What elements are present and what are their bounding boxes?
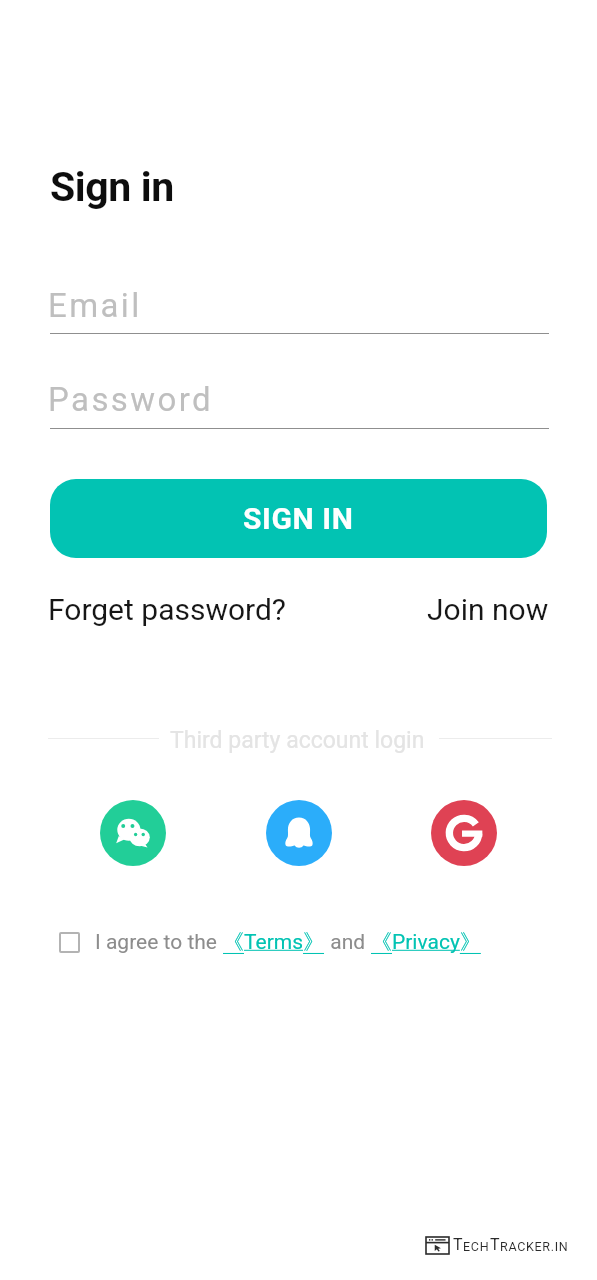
staticText: Sign in xyxy=(50,163,174,211)
staticText: Password xyxy=(48,380,213,419)
staticText: Third party account login xyxy=(170,727,425,754)
button[interactable]: 《Terms》 xyxy=(223,929,325,955)
staticText: RACKER.IN xyxy=(500,1239,569,1254)
button[interactable]: Sign in with QQ xyxy=(266,800,332,866)
button[interactable]: Agree to terms checkbox xyxy=(59,932,80,953)
button[interactable]: Password input field xyxy=(50,367,549,429)
button[interactable]: 《Privacy》 xyxy=(371,929,481,955)
staticText: ECH xyxy=(463,1239,490,1254)
staticText: T xyxy=(453,1235,463,1254)
button[interactable]: Join now xyxy=(427,592,549,627)
button[interactable]: SIGN IN xyxy=(50,479,547,558)
button[interactable]: Email input field xyxy=(50,272,549,334)
button[interactable]: Forget password? xyxy=(48,592,287,627)
staticText: T xyxy=(490,1235,500,1254)
staticText: I agree to the xyxy=(95,930,223,955)
staticText: Email xyxy=(48,286,142,325)
staticText: SIGN IN xyxy=(243,501,354,536)
button[interactable]: Sign in with Google xyxy=(431,800,497,866)
staticText: and xyxy=(325,930,371,955)
button[interactable]: Sign in with WeChat xyxy=(100,800,166,866)
